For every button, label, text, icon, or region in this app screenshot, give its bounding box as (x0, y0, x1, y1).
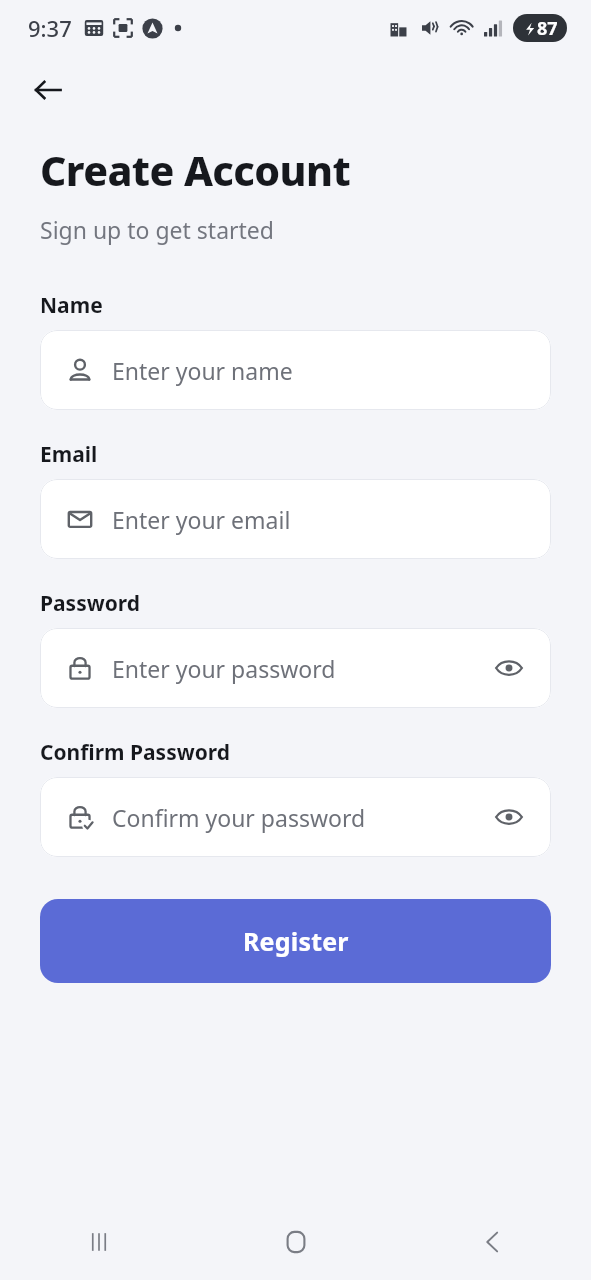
staticText: Password (40, 589, 141, 618)
button[interactable]: Enter your name (40, 330, 551, 410)
staticText: Confirm your password (112, 802, 366, 833)
staticText: Create Account (40, 142, 351, 198)
button[interactable]: Toggle password visibility (489, 648, 529, 688)
button[interactable]: Back (26, 68, 70, 112)
staticText: Name (40, 291, 103, 320)
staticText: 87 (537, 16, 558, 41)
button[interactable]: Toggle password visibility (489, 797, 529, 837)
button[interactable]: Enter your password (40, 628, 551, 708)
button[interactable]: Register (40, 899, 551, 983)
staticText: Sign up to get started (40, 214, 274, 245)
staticText: Confirm Password (40, 738, 231, 767)
staticText: Enter your name (112, 355, 293, 386)
staticText: Email (40, 440, 98, 469)
button[interactable]: Enter your email (40, 479, 551, 559)
staticText: 9:37 (28, 13, 72, 43)
staticText: Register (243, 924, 349, 958)
staticText: Enter your email (112, 504, 291, 535)
button[interactable]: Back (394, 1204, 591, 1280)
button[interactable]: Confirm your password (40, 777, 551, 857)
button[interactable]: Recent apps (0, 1204, 197, 1280)
staticText: Enter your password (112, 653, 336, 684)
button[interactable]: Home (197, 1204, 394, 1280)
